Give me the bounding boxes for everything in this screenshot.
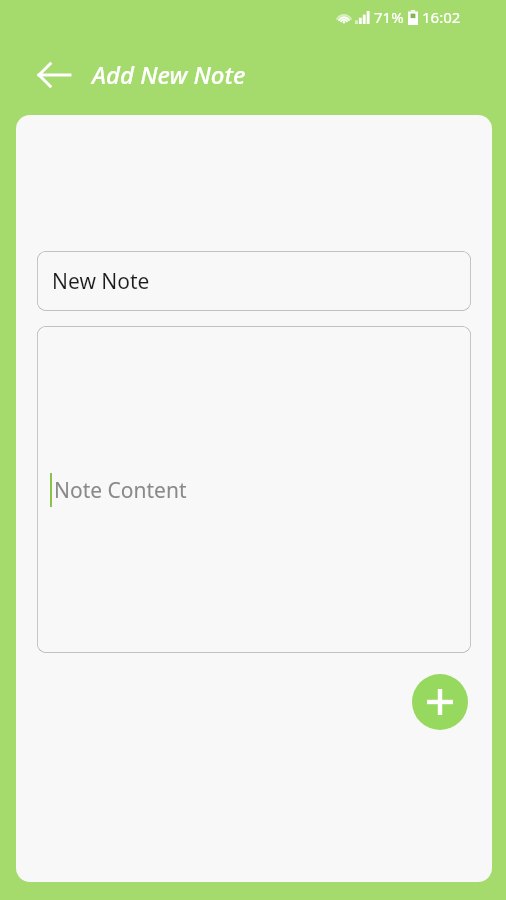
button[interactable]: Back (30, 51, 78, 99)
button[interactable]: Add note (412, 674, 468, 730)
button[interactable]: New Note (37, 251, 471, 311)
staticText: 16:02 (422, 7, 461, 27)
staticText: Note Content (54, 476, 187, 505)
staticText: Add New Note (92, 58, 246, 91)
staticText: 71% (374, 7, 404, 27)
button[interactable]: Note Content (37, 326, 471, 653)
staticText: New Note (52, 267, 150, 296)
